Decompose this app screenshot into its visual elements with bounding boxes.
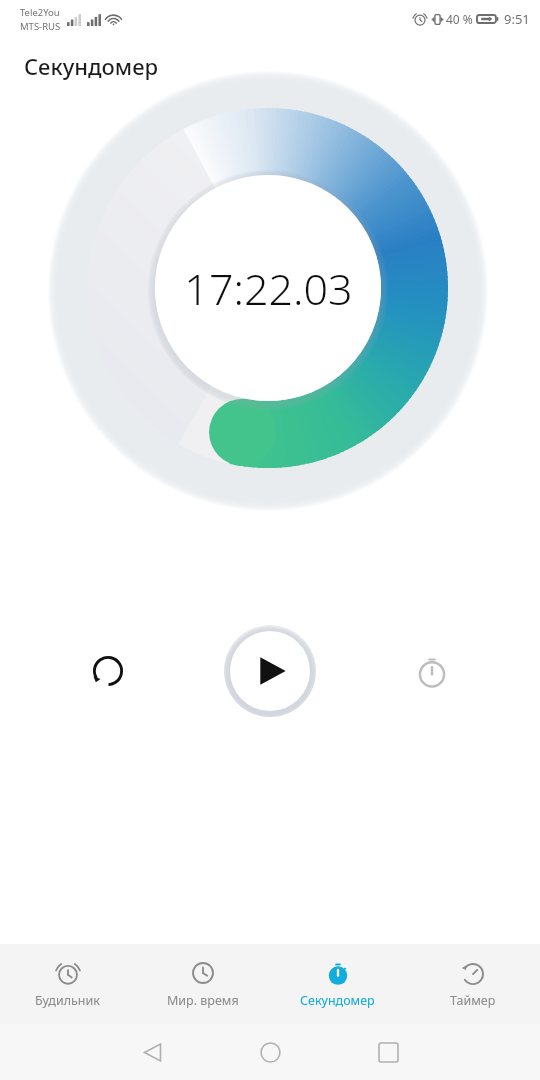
button[interactable]: Back — [116, 1028, 188, 1076]
button[interactable]: Таймер — [405, 944, 540, 1024]
staticText: Секундомер — [300, 992, 375, 1009]
button[interactable]: Reset — [80, 643, 136, 699]
button[interactable]: Recents — [352, 1028, 424, 1076]
staticText: 40 % — [446, 11, 473, 27]
button[interactable]: Start — [224, 625, 316, 717]
button[interactable]: Секундомер — [270, 944, 405, 1024]
staticText: MTS-RUS — [20, 20, 61, 33]
button[interactable]: Lap — [404, 643, 460, 699]
staticText: 9:51 — [504, 10, 530, 28]
staticText: Tele2You — [20, 6, 60, 19]
button[interactable]: Будильник — [0, 944, 135, 1024]
staticText: Секундомер — [24, 51, 159, 81]
staticText: 17:22.03 — [184, 259, 353, 318]
staticText: Будильник — [35, 992, 100, 1009]
button[interactable]: Home — [234, 1028, 306, 1076]
staticText: Мир. время — [167, 992, 239, 1009]
button[interactable]: Мир. время — [135, 944, 270, 1024]
staticText: Таймер — [450, 992, 496, 1009]
